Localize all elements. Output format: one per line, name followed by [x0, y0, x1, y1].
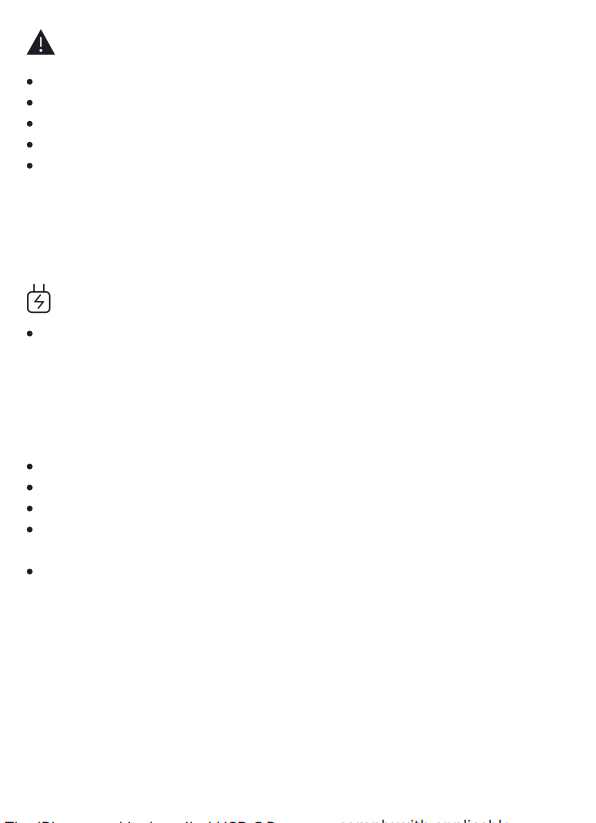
staticText: The iPhone and its bundled USB-C Power A… [5, 817, 314, 823]
staticText: comply with applicable regional regulati… [338, 815, 511, 823]
button[interactable]: The iPhone and its bundled USB-C Power A… [0, 817, 596, 823]
